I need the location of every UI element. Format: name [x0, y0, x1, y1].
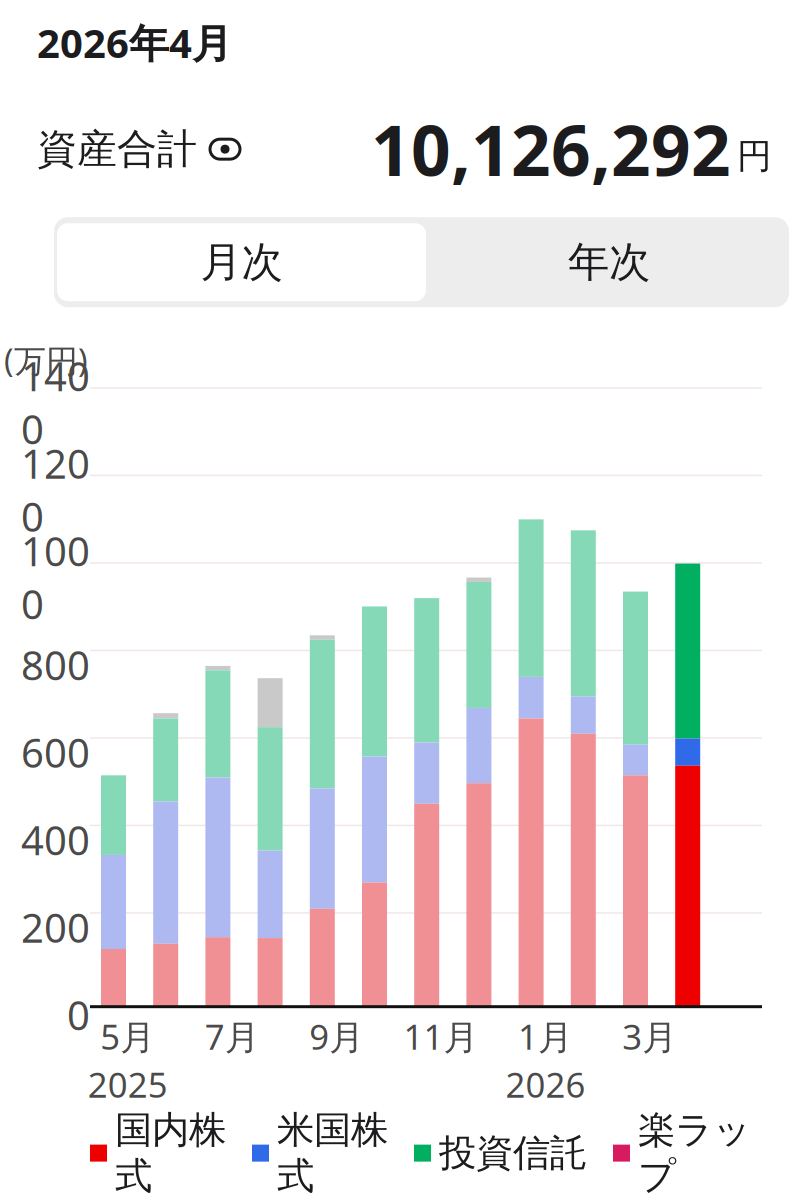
staticText: 2025	[88, 1061, 168, 1107]
staticText: 資産合計	[37, 125, 197, 174]
staticText: 円	[737, 135, 772, 177]
staticText: 800	[21, 638, 90, 691]
staticText: 9月	[309, 1013, 364, 1059]
staticText: (万円)	[4, 339, 88, 381]
staticText: 2026	[505, 1061, 585, 1107]
staticText: 楽ラップ	[638, 1107, 751, 1199]
staticText: 5月	[100, 1013, 155, 1059]
staticText: 200	[21, 901, 90, 954]
staticText: 年次	[568, 237, 650, 288]
staticText: 0	[67, 988, 90, 1041]
staticText: 1000	[21, 524, 90, 630]
button[interactable]: 月次	[54, 217, 429, 307]
staticText: 月次	[200, 237, 282, 288]
button[interactable]: 年次	[429, 217, 789, 307]
staticText: 1月	[518, 1013, 573, 1059]
staticText: 600	[21, 726, 90, 779]
staticText: 400	[21, 813, 90, 866]
staticText: 7月	[205, 1013, 260, 1059]
staticText: 3月	[622, 1013, 677, 1059]
staticText: 1400	[21, 349, 90, 455]
staticText: 2026年4月	[37, 16, 232, 69]
button[interactable]: 資産合計を表示	[37, 125, 241, 174]
staticText: 米国株式	[277, 1107, 388, 1199]
staticText: 11月	[404, 1013, 479, 1059]
staticText: 10,126,292	[371, 103, 731, 195]
staticText: 投資信託	[439, 1130, 587, 1176]
staticText: 国内株式	[115, 1107, 226, 1199]
staticText: 1200	[21, 437, 90, 543]
